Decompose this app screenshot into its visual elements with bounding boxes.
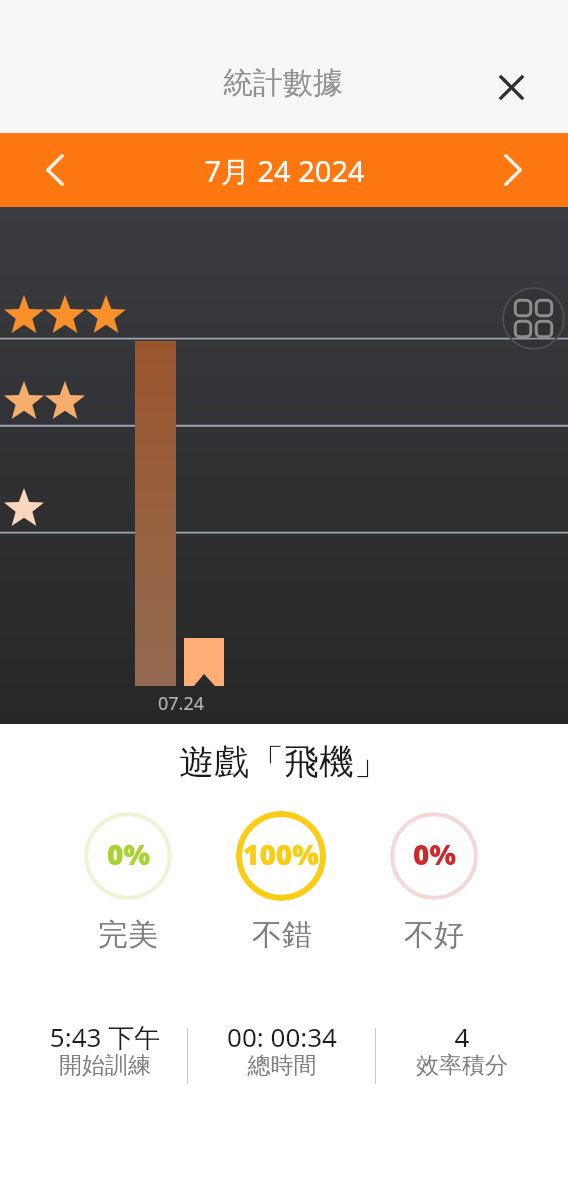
- staticText: 不錯: [252, 916, 312, 954]
- staticText: 07.24: [116, 691, 246, 716]
- staticText: 開始訓練: [15, 1051, 195, 1080]
- staticText: 4: [372, 1019, 552, 1054]
- button[interactable]: 100%: [236, 811, 326, 901]
- staticText: 完美: [98, 916, 158, 954]
- staticText: 00: 00:34: [192, 1019, 372, 1054]
- staticText: 5:43 下午: [15, 1019, 195, 1055]
- button[interactable]: Grid view: [502, 287, 565, 350]
- staticText: 100%: [243, 835, 319, 873]
- button[interactable]: Previous day: [0, 133, 110, 207]
- staticText: 不好: [404, 916, 464, 954]
- button[interactable]: 0%: [390, 812, 478, 900]
- button[interactable]: Close: [489, 65, 533, 109]
- button[interactable]: 00: 00:34: [192, 1018, 372, 1088]
- button[interactable]: 0%: [84, 812, 172, 900]
- staticText: 統計數據: [223, 64, 343, 102]
- button[interactable]: 4: [372, 1018, 552, 1088]
- staticText: 遊戲「飛機」: [0, 740, 568, 784]
- staticText: 7月 24 2024: [204, 151, 365, 191]
- staticText: 0%: [107, 835, 150, 873]
- button[interactable]: Next day: [458, 133, 568, 207]
- staticText: 總時間: [192, 1051, 372, 1080]
- button[interactable]: 5:43 下午: [15, 1018, 195, 1088]
- staticText: 0%: [413, 835, 456, 873]
- staticText: 效率積分: [372, 1051, 552, 1080]
